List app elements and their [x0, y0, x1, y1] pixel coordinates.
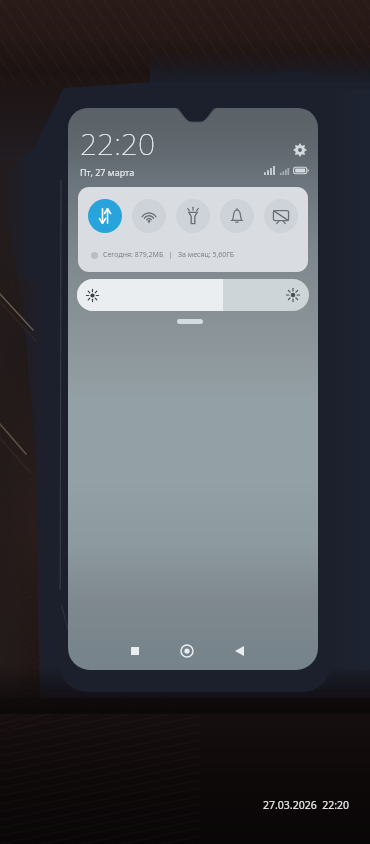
staticText: Сегодня: 879,2МБ | За месяц: 5,60ГБ [103, 250, 235, 260]
button[interactable]: Quick setting [264, 199, 298, 233]
button[interactable]: Quick setting [176, 199, 210, 233]
button[interactable]: Settings [293, 143, 307, 157]
staticText: Пт, 27 марта [80, 166, 135, 178]
staticText: 27.03.2026 22:20 [263, 798, 349, 812]
staticText: 22:20 [80, 123, 155, 164]
button[interactable]: Back [226, 638, 252, 664]
button[interactable]: Quick setting [220, 199, 254, 233]
button[interactable]: Quick setting [132, 199, 166, 233]
button[interactable]: Quick setting [88, 199, 122, 233]
button[interactable]: Recents [122, 638, 148, 664]
button[interactable]: Home [174, 638, 200, 664]
button[interactable]: Brightness [77, 279, 309, 311]
